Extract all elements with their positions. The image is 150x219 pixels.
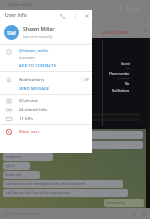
- button[interactable]: 50 photos: [5, 96, 92, 105]
- button[interactable]: Phone number: [109, 72, 130, 79]
- staticText: Block user: [19, 129, 40, 135]
- staticText: ok thanks bo: [106, 201, 126, 205]
- button[interactable]: 24 shared links: [5, 105, 92, 114]
- staticText: Media · 50 photos: [12, 96, 36, 100]
- staticText: User info: [5, 12, 27, 19]
- staticText: consectetur adipiscing elit sed do eiusm…: [5, 133, 81, 137]
- button[interactable]: @shawn_miller: [5, 48, 92, 60]
- staticText: @shawn_miller: [19, 48, 49, 54]
- staticText: ADD TO CONTACTS: [19, 63, 57, 68]
- button[interactable]: 11 GIFs: [5, 114, 92, 123]
- staticText: no worries: [5, 155, 21, 159]
- staticText: last seen recently: [23, 34, 53, 39]
- button[interactable]: Sound: [121, 62, 130, 69]
- button[interactable]: Notifications: [5, 75, 89, 84]
- button[interactable]: Search: [117, 5, 124, 12]
- button[interactable]: Emoji: [3, 211, 9, 217]
- staticText: 24 shared links: [19, 107, 48, 112]
- button[interactable]: More options: [71, 12, 79, 20]
- staticText: On: [126, 66, 130, 69]
- staticText: thanks alot: [5, 173, 22, 177]
- button[interactable]: SEND MESSAGE: [19, 85, 92, 92]
- button[interactable]: Video call: [133, 5, 140, 12]
- button[interactable]: Close: [83, 12, 91, 20]
- staticText: +1 202 555: [117, 76, 130, 79]
- staticText: username: [19, 55, 36, 60]
- staticText: I will pay you this 1 out of the four co…: [5, 191, 71, 195]
- button[interactable]: Bio: [125, 82, 130, 86]
- button[interactable]: Dismiss: [142, 28, 148, 34]
- staticText: Sound: [121, 62, 130, 66]
- button[interactable]: Call: [125, 5, 132, 12]
- button[interactable]: Block user: [5, 127, 92, 136]
- staticText: consectetur adipiscing elit sed: [7, 105, 44, 109]
- staticText: Shawn Miller: [23, 26, 55, 33]
- button[interactable]: Call: [58, 11, 67, 20]
- button[interactable]: Notifications: [112, 89, 130, 93]
- staticText: Write a message...: [12, 211, 45, 216]
- staticText: Phone number: [109, 72, 130, 76]
- staticText: SM: [7, 29, 16, 37]
- staticText: Bio: [125, 82, 130, 86]
- button[interactable]: Voice message: [141, 211, 147, 217]
- button[interactable]: Dismiss: [142, 16, 148, 22]
- staticText: SEND MESSAGE: [19, 86, 50, 91]
- staticText: i got it: [5, 164, 15, 168]
- staticText: 50 photos: [19, 98, 38, 103]
- button[interactable]: SM: [4, 21, 92, 44]
- staticText: I will start you this monday for work, h…: [5, 182, 86, 186]
- staticText: BLOCK USER: [103, 30, 129, 35]
- staticText: Notifications: [112, 89, 130, 93]
- staticText: last seen recently: [5, 57, 28, 61]
- staticText: Notifications: [19, 77, 44, 83]
- staticText: SM: [7, 41, 12, 45]
- button[interactable]: Notifications toggle: [80, 77, 89, 82]
- staticText: Shawn Miller: [8, 2, 33, 7]
- button[interactable]: ADD TO CONTACTS: [19, 62, 92, 69]
- staticText: SHAWN MILLER: [5, 50, 39, 56]
- staticText: 11 GIFs: [19, 116, 33, 121]
